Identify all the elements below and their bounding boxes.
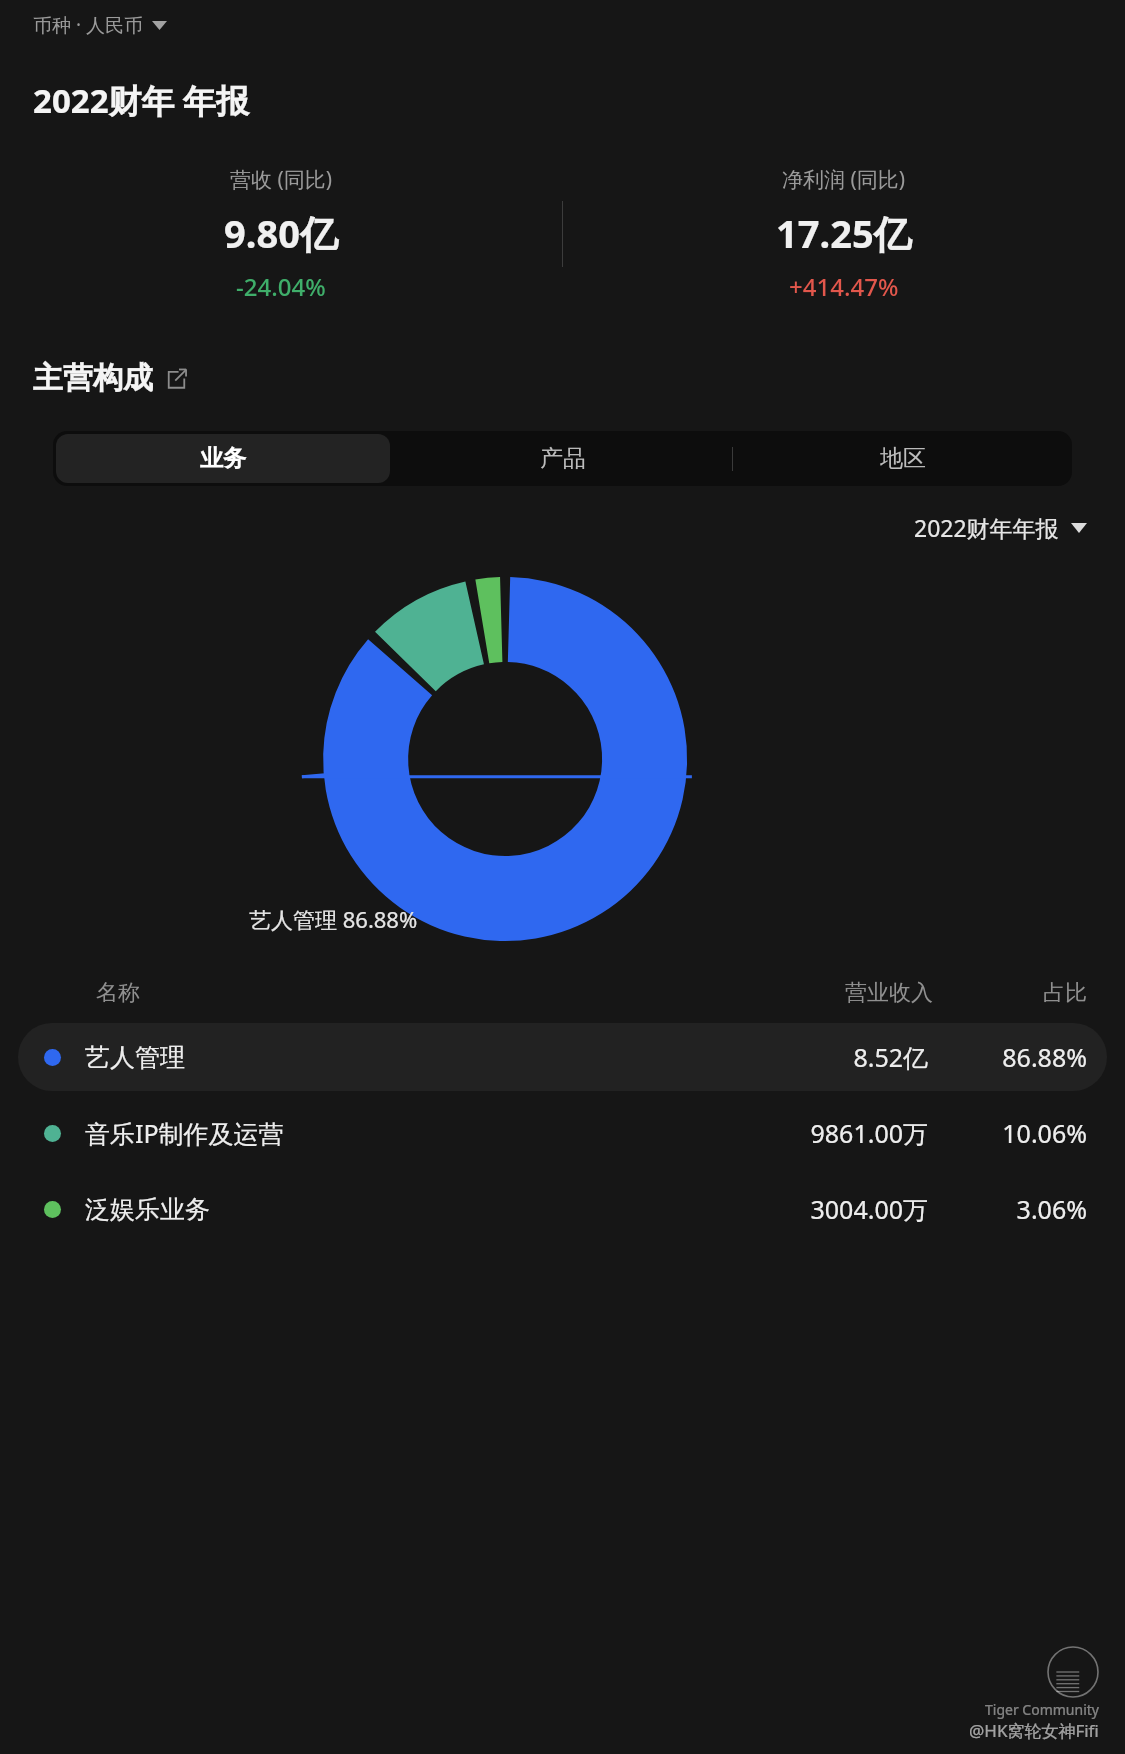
- staticText: 币种 · 人民币: [33, 12, 143, 38]
- staticText: 8.52亿: [753, 1040, 928, 1074]
- staticText: Tiger Community: [985, 1700, 1099, 1719]
- staticText: 地区: [880, 444, 926, 473]
- staticText: 营收 (同比): [230, 165, 333, 194]
- staticText: 86.88%: [962, 1040, 1087, 1074]
- button[interactable]: 币种 · 人民币: [33, 6, 167, 44]
- other: Share: [166, 368, 187, 389]
- staticText: 业务: [200, 444, 246, 473]
- staticText: +414.47%: [789, 270, 899, 303]
- staticText: 艺人管理 86.88%: [249, 904, 418, 934]
- staticText: 9861.00万: [753, 1116, 928, 1150]
- staticText: 名称: [96, 979, 140, 1007]
- staticText: 占比: [967, 979, 1087, 1007]
- button[interactable]: 艺人管理: [18, 1023, 1107, 1091]
- staticText: 音乐IP制作及运营: [85, 1116, 284, 1150]
- staticText: 2022财年年报: [914, 512, 1059, 543]
- staticText: 泛娱乐业务: [85, 1194, 210, 1225]
- staticText: 17.25亿: [776, 207, 912, 259]
- staticText: 2022财年 年报: [33, 78, 250, 123]
- button[interactable]: 泛娱乐业务: [18, 1175, 1107, 1243]
- button[interactable]: 地区: [733, 431, 1072, 486]
- staticText: 净利润 (同比): [782, 165, 906, 194]
- staticText: -24.04%: [236, 270, 326, 303]
- staticText: @HK窝轮女神Fifi: [969, 1719, 1099, 1742]
- staticText: 营业收入: [763, 979, 933, 1007]
- button[interactable]: 音乐IP制作及运营: [18, 1099, 1107, 1167]
- staticText: 9.80亿: [224, 207, 338, 259]
- button[interactable]: 业务: [56, 434, 390, 483]
- button[interactable]: 2022财年年报: [908, 506, 1093, 549]
- staticText: 产品: [540, 444, 586, 473]
- staticText: 3004.00万: [753, 1192, 928, 1226]
- staticText: 主营构成: [33, 359, 153, 397]
- button[interactable]: 产品: [393, 431, 732, 486]
- button[interactable]: 主营构成: [33, 359, 187, 397]
- staticText: 艺人管理: [85, 1042, 185, 1073]
- staticText: 3.06%: [962, 1192, 1087, 1226]
- staticText: 10.06%: [962, 1116, 1087, 1150]
